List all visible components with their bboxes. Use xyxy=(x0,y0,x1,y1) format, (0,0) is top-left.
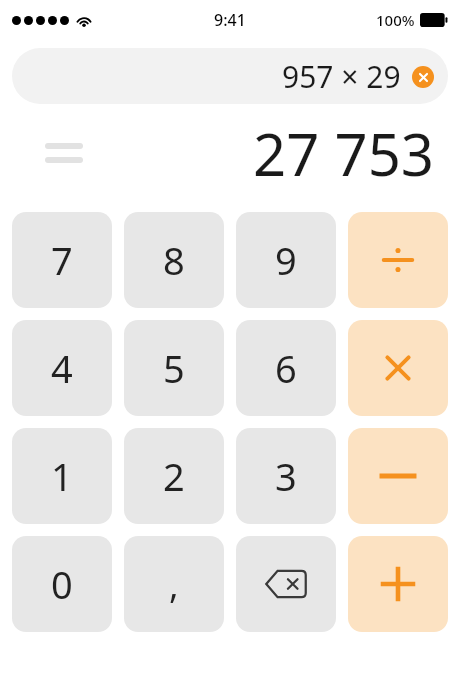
button[interactable]: Multiply xyxy=(348,320,448,416)
staticText: 0 xyxy=(51,558,73,610)
button[interactable]: 8 xyxy=(124,212,224,308)
button[interactable]: Divide xyxy=(348,212,448,308)
staticText: 5 xyxy=(163,342,185,394)
staticText: 2 xyxy=(163,450,185,502)
staticText: 957 × 29 xyxy=(282,56,401,97)
staticText: 100% xyxy=(376,10,415,30)
button[interactable]: 0 xyxy=(12,536,112,632)
button[interactable]: , xyxy=(124,536,224,632)
button[interactable]: 4 xyxy=(12,320,112,416)
staticText: 1 xyxy=(51,450,73,502)
staticText: 7 xyxy=(51,234,73,286)
staticText: 6 xyxy=(275,342,297,394)
button[interactable]: 3 xyxy=(236,428,336,524)
button[interactable]: Clear xyxy=(412,66,434,88)
staticText: 3 xyxy=(275,450,297,502)
button[interactable]: 957 × 29 xyxy=(12,48,448,104)
staticText: , xyxy=(169,560,179,609)
button[interactable]: 1 xyxy=(12,428,112,524)
button[interactable]: 6 xyxy=(236,320,336,416)
staticText: 9:41 xyxy=(214,9,246,31)
button[interactable]: 5 xyxy=(124,320,224,416)
staticText: 27 753 xyxy=(253,114,434,193)
button[interactable]: 7 xyxy=(12,212,112,308)
button[interactable]: 9 xyxy=(236,212,336,308)
staticText: 4 xyxy=(51,342,73,394)
button[interactable]: Backspace xyxy=(236,536,336,632)
staticText: 9 xyxy=(275,234,297,286)
button[interactable]: Subtract xyxy=(348,428,448,524)
button[interactable]: Add xyxy=(348,536,448,632)
staticText: 8 xyxy=(163,234,185,286)
button[interactable]: 2 xyxy=(124,428,224,524)
